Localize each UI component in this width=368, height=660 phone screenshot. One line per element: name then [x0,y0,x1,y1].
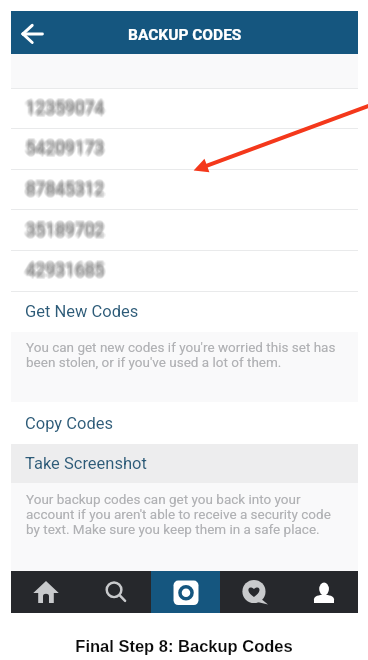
staticText: 35189702 [27,220,106,241]
button[interactable]: Home [11,571,81,613]
staticText: 12359074 [25,96,104,117]
staticText: 42931685 [24,260,103,281]
staticText: 54209173 [26,135,105,156]
staticText: 35189702 [26,218,105,239]
staticText: 12359074 [28,97,107,118]
staticText: 87845312 [28,180,107,201]
staticText: 54209173 [28,138,107,159]
staticText: 42931685 [26,258,105,279]
staticText: 35189702 [28,221,107,242]
staticText: You can get new codes if you're worried … [26,339,336,370]
button[interactable]: Back [11,11,55,54]
staticText: 35189702 [27,219,106,240]
staticText: 35189702 [27,221,106,242]
staticText: 35189702 [26,220,105,241]
staticText: 35189702 [23,219,102,240]
staticText: 87845312 [25,176,104,197]
staticText: 12359074 [25,95,104,116]
staticText: 35189702 [26,222,105,243]
staticText: 54209173 [26,137,105,158]
button[interactable]: Activity [220,571,289,613]
staticText: 35189702 [25,220,104,241]
button[interactable]: Search [81,571,151,613]
staticText: 87845312 [26,176,105,197]
staticText: 42931685 [26,257,105,278]
staticText: 42931685 [25,257,104,278]
staticText: 42931685 [23,259,102,280]
staticText: 87845312 [27,180,106,201]
staticText: 42931685 [28,259,107,280]
staticText: 54209173 [25,138,104,159]
staticText: 35189702 [23,221,102,242]
staticText: 35189702 [24,218,103,239]
staticText: 42931685 [24,258,103,279]
staticText: 42931685 [28,261,107,282]
staticText: 87845312 [25,180,104,201]
staticText: 12359074 [24,99,103,120]
staticText: 42931685 [23,260,102,281]
staticText: 12359074 [28,99,107,120]
staticText: 87845312 [24,177,103,198]
staticText: 87845312 [27,181,106,202]
staticText: 87845312 [26,182,105,203]
staticText: 54209173 [27,140,106,161]
button[interactable]: 35189702 [11,210,358,251]
staticText: 54209173 [23,138,102,159]
staticText: 87845312 [28,179,107,200]
staticText: 54209173 [25,137,104,158]
staticText: 35189702 [26,220,105,241]
staticText: 12359074 [25,100,104,121]
button[interactable]: Copy Codes [11,402,358,444]
staticText: 12359074 [26,97,105,118]
staticText: 54209173 [24,139,103,160]
staticText: 35189702 [26,223,105,244]
staticText: 12359074 [26,100,105,121]
button[interactable]: 42931685 [11,250,358,291]
staticText: 42931685 [26,257,105,278]
staticText: 35189702 [24,221,103,242]
button[interactable]: 54209173 [11,128,358,169]
button[interactable]: Take Screenshot [11,444,358,483]
staticText: 87845312 [27,178,106,199]
staticText: 54209173 [28,137,107,158]
staticText: 12359074 [26,98,105,119]
staticText: 87845312 [26,179,105,200]
staticText: 87845312 [23,178,102,199]
staticText: 35189702 [23,220,102,241]
button[interactable]: 87845312 [11,169,358,210]
staticText: 54209173 [26,141,105,162]
staticText: 42931685 [26,262,105,283]
staticText: 87845312 [26,176,105,197]
staticText: 42931685 [26,259,105,280]
staticText: 12359074 [26,97,105,118]
staticText: 35189702 [25,223,104,244]
button[interactable]: 12359074 [11,88,358,128]
staticText: 87845312 [26,178,105,199]
staticText: 12359074 [27,99,106,120]
staticText: 12359074 [23,97,102,118]
staticText: 87845312 [26,180,105,201]
staticText: 42931685 [28,260,107,281]
button[interactable]: Camera [151,571,220,613]
button[interactable]: Get New Codes [11,291,358,332]
staticText: 87845312 [25,179,104,200]
staticText: 35189702 [24,222,103,243]
staticText: 42931685 [27,259,106,280]
staticText: 54209173 [27,137,106,158]
staticText: 87845312 [24,180,103,201]
staticText: 12359074 [25,97,104,118]
staticText: 87845312 [26,177,105,198]
staticText: 42931685 [26,261,105,282]
staticText: 42931685 [25,262,104,283]
staticText: 35189702 [26,222,105,243]
staticText: 42931685 [24,259,103,280]
staticText: 12359074 [25,99,104,120]
staticText: 54209173 [26,139,105,160]
button[interactable]: Profile [289,571,358,613]
staticText: 35189702 [24,220,103,241]
staticText: 54209173 [26,141,105,162]
staticText: 54209173 [23,139,102,160]
staticText: 42931685 [24,261,103,282]
staticText: 12359074 [23,98,102,119]
staticText: 12359074 [28,98,107,119]
